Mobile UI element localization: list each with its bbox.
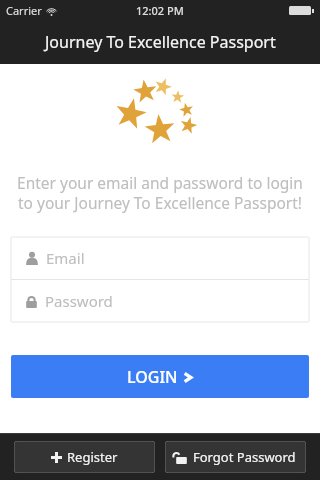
staticText: LOGIN — [127, 366, 178, 388]
button[interactable]: Forgot Password — [165, 441, 306, 473]
staticText: Password — [45, 291, 113, 311]
button[interactable]: LOGIN — [11, 355, 309, 398]
button[interactable]: Password — [11, 280, 309, 322]
staticText: Email — [46, 248, 85, 268]
staticText: 12:02 PM — [136, 3, 184, 18]
button[interactable]: Register — [14, 441, 155, 473]
staticText: Register — [67, 448, 118, 466]
staticText: Enter your email and password to login t… — [14, 172, 306, 214]
staticText: Carrier — [6, 3, 42, 18]
staticText: Journey To Excellence Passport — [45, 31, 276, 53]
button[interactable]: Email — [11, 237, 309, 279]
other: Login — [182, 372, 193, 383]
staticText: Forgot Password — [193, 448, 296, 466]
